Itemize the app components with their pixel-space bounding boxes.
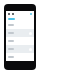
button[interactable] bbox=[8, 45, 32, 53]
button[interactable] bbox=[8, 37, 32, 45]
button[interactable] bbox=[8, 21, 32, 29]
button[interactable] bbox=[8, 29, 32, 37]
button[interactable] bbox=[8, 53, 32, 61]
